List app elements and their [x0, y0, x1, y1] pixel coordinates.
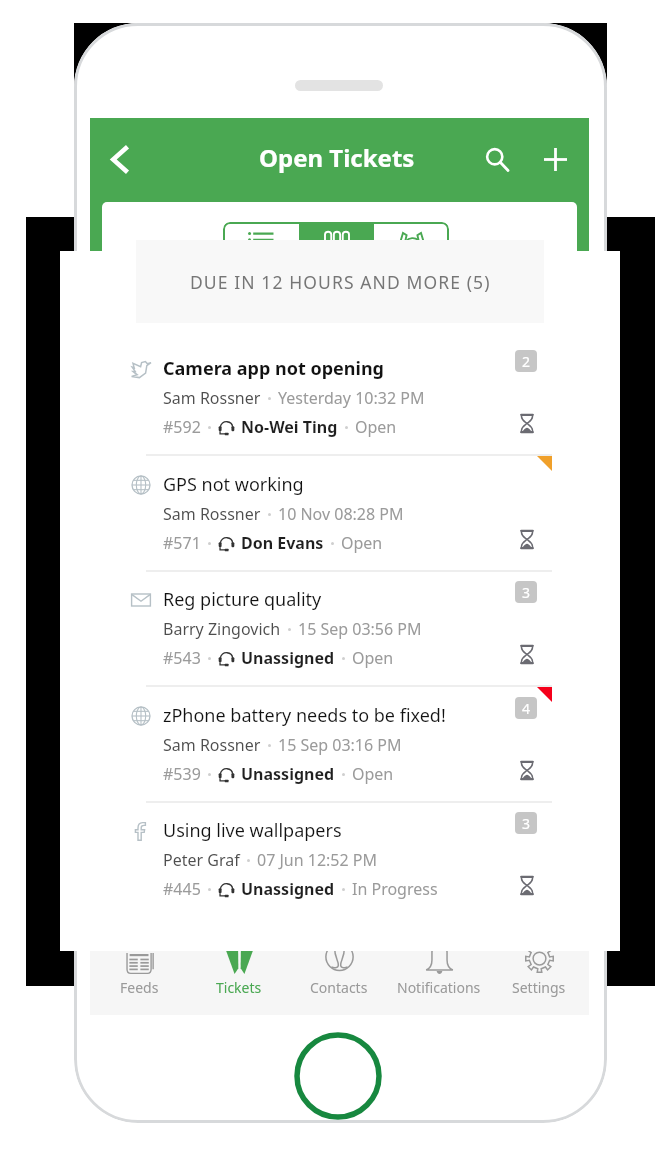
button[interactable]: Feeds	[90, 951, 189, 1015]
staticText: 15 Sep 03:56 PM	[298, 618, 422, 640]
button[interactable]: Back	[95, 135, 143, 183]
staticText: 3	[522, 583, 531, 602]
staticText: Reg picture quality	[163, 587, 322, 612]
staticText: Open	[352, 763, 394, 785]
button[interactable]: Graph view	[374, 222, 449, 268]
staticText: Camera app not opening	[163, 356, 384, 381]
button[interactable]: Using live wallpapers	[60, 802, 620, 918]
staticText: Unassigned	[241, 763, 335, 785]
button[interactable]: Settings	[489, 951, 589, 1015]
staticText: 07 Jun 12:52 PM	[257, 849, 378, 871]
staticText: Contacts	[310, 978, 368, 997]
button[interactable]: Notifications	[389, 951, 489, 1015]
staticText: 15 Sep 03:16 PM	[278, 734, 402, 756]
staticText: Open	[352, 647, 394, 669]
staticText: Unassigned	[241, 647, 335, 669]
staticText: Open Tickets	[259, 141, 415, 174]
button[interactable]: Search	[473, 135, 521, 183]
staticText: Sam Rossner	[163, 503, 261, 525]
staticText: Open	[341, 532, 383, 554]
staticText: 3	[522, 814, 531, 833]
staticText: Sam Rossner	[163, 734, 261, 756]
button[interactable]: Contacts	[289, 951, 389, 1015]
staticText: 10 Nov 08:28 PM	[278, 503, 404, 525]
staticText: Yesterday 10:32 PM	[278, 387, 425, 409]
staticText: Settings	[512, 978, 566, 997]
staticText: Sam Rossner	[163, 387, 261, 409]
button[interactable]: Tickets	[189, 951, 289, 1015]
button[interactable]: GPS not working	[60, 456, 620, 572]
staticText: Feeds	[120, 978, 159, 997]
button[interactable]: Add ticket	[531, 135, 579, 183]
button[interactable]: Camera app not opening	[60, 340, 620, 456]
staticText: Unassigned	[241, 878, 335, 900]
button[interactable]: zPhone battery needs to be fixed!	[60, 687, 620, 803]
staticText: DUE IN 12 HOURS AND MORE (5)	[190, 270, 491, 294]
staticText: #592	[163, 416, 201, 438]
staticText: Barry Zingovich	[163, 618, 281, 640]
staticText: 4	[522, 699, 531, 718]
staticText: 2	[522, 352, 531, 371]
button[interactable]: List view	[223, 222, 299, 268]
staticText: #539	[163, 763, 201, 785]
staticText: #571	[163, 532, 201, 554]
staticText: #445	[163, 878, 201, 900]
staticText: Don Evans	[241, 532, 324, 554]
staticText: No-Wei Ting	[241, 416, 338, 438]
staticText: Notifications	[397, 978, 481, 997]
button[interactable]: Chart view	[299, 222, 374, 268]
staticText: zPhone battery needs to be fixed!	[163, 703, 446, 728]
staticText: Peter Graf	[163, 849, 240, 871]
staticText: #543	[163, 647, 201, 669]
staticText: Tickets	[216, 978, 262, 997]
staticText: Open	[355, 416, 397, 438]
staticText: Using live wallpapers	[163, 818, 342, 843]
button[interactable]: Reg picture quality	[60, 571, 620, 687]
staticText: GPS not working	[163, 472, 304, 497]
staticText: In Progress	[352, 878, 438, 900]
